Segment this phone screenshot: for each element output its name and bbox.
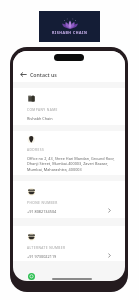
button[interactable]: COMPANY NAME: [13, 88, 125, 125]
button[interactable]: WhatsApp: [28, 273, 35, 280]
staticText: ADDRESS: [27, 148, 45, 152]
staticText: +91 9730022119: [27, 254, 57, 259]
staticText: +91 8082134504: [27, 209, 57, 214]
staticText: Office no 2, 43, Shree Hari Mandan, Grou…: [27, 156, 115, 173]
button[interactable]: Back: [20, 71, 27, 78]
button[interactable]: ALTERNATE NUMBER: [13, 226, 125, 261]
staticText: COMPANY NAME: [27, 108, 58, 112]
staticText: Contact us: [30, 71, 57, 78]
button[interactable]: PHONE NUMBER: [13, 181, 125, 218]
staticText: PHONE NUMBER: [27, 201, 58, 205]
button[interactable]: ADDRESS: [13, 131, 125, 175]
staticText: ALTERNATE NUMBER: [27, 246, 66, 250]
staticText: Rishabh Chain: [27, 116, 53, 121]
staticText: RISHABH CHAIN: [52, 30, 88, 35]
